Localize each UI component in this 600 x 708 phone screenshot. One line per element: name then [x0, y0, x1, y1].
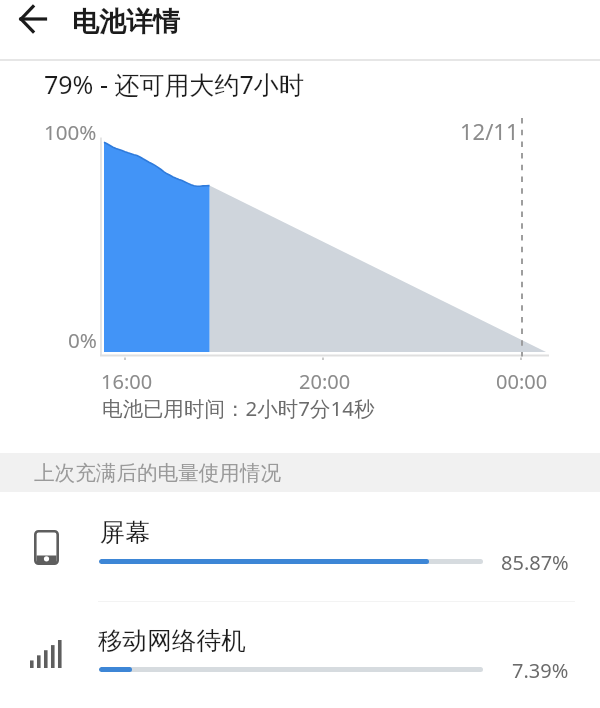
staticText: 电池已用时间：2小时7分14秒: [102, 394, 375, 422]
staticText: 7.39%: [512, 657, 569, 684]
staticText: 上次充满后的电量使用情况: [34, 460, 282, 486]
staticText: 79% - 还可用大约7小时: [44, 67, 304, 101]
staticText: 100%: [44, 118, 97, 146]
staticText: 00:00: [496, 368, 548, 395]
staticText: 0%: [68, 326, 97, 354]
button[interactable]: 移动网络待机: [0, 613, 600, 708]
staticText: 20:00: [299, 368, 351, 395]
staticText: 移动网络待机: [98, 625, 246, 656]
staticText: 16:00: [101, 368, 153, 395]
button[interactable]: Back: [0, 0, 58, 59]
staticText: 电池详情: [72, 5, 180, 39]
staticText: 12/11: [460, 116, 519, 146]
staticText: 屏幕: [100, 517, 150, 548]
button[interactable]: 屏幕: [0, 505, 600, 605]
staticText: 85.87%: [501, 549, 569, 576]
